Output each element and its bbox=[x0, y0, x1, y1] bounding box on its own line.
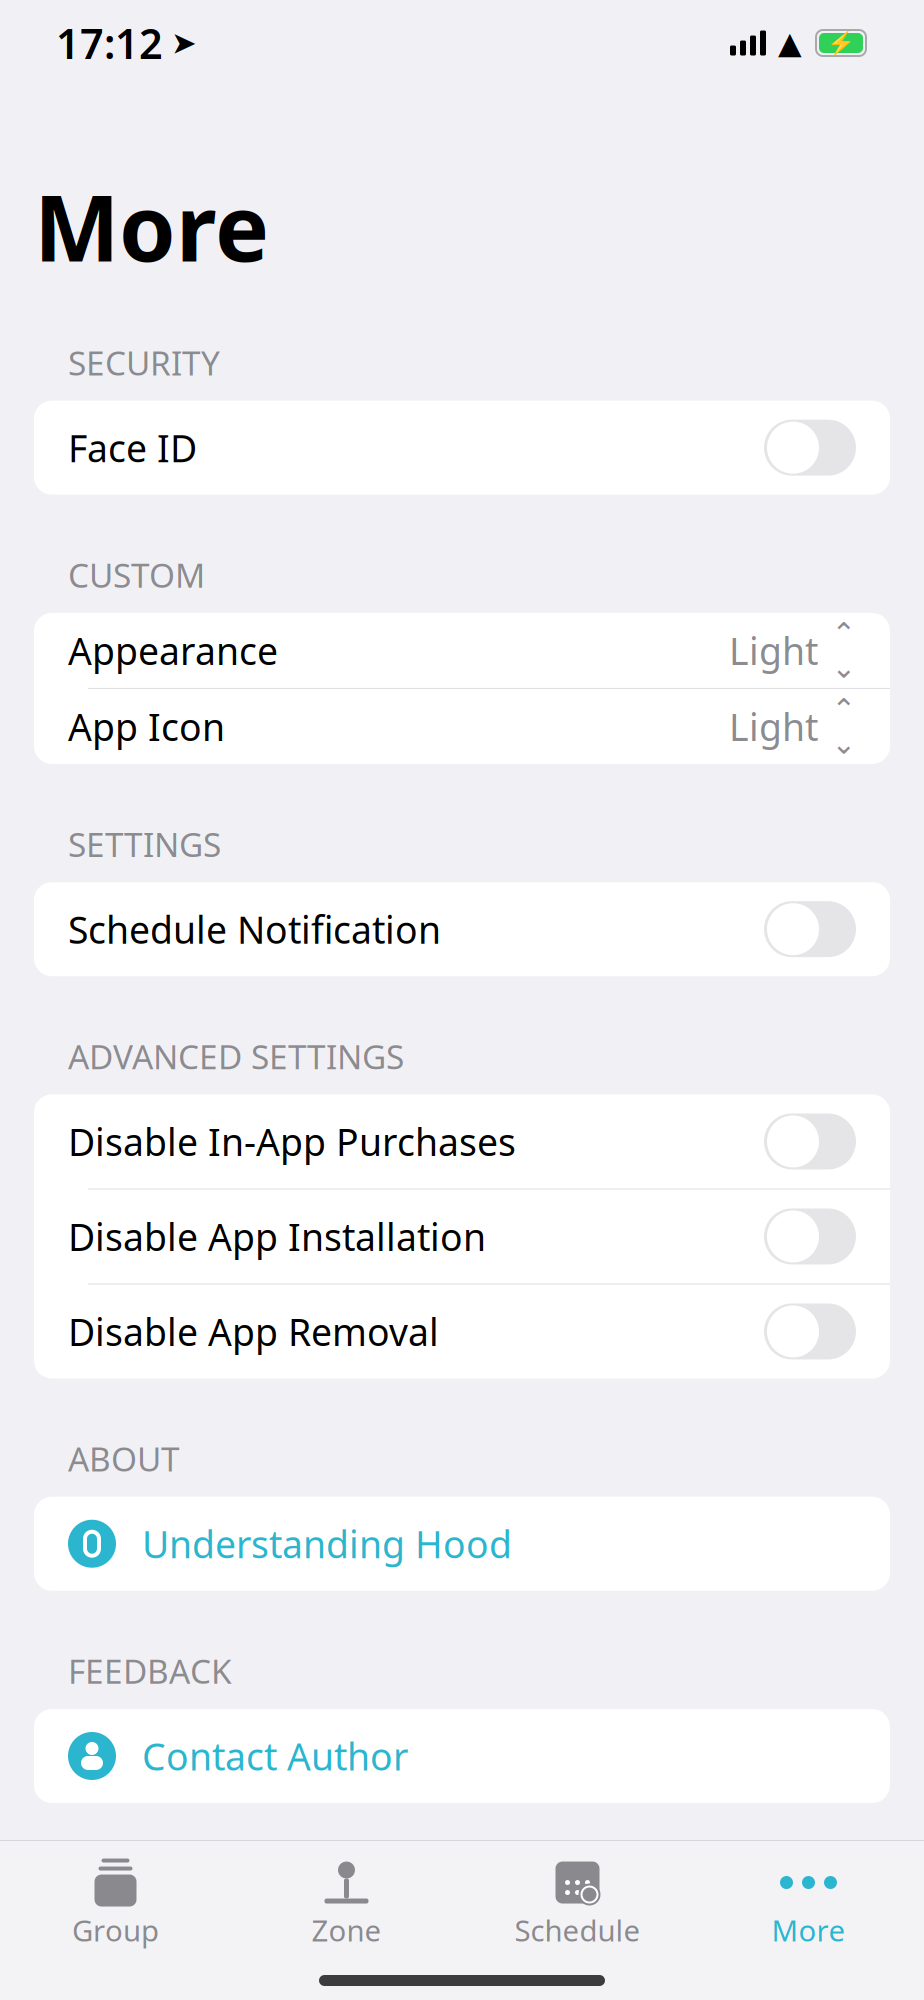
staticText: Disable App Installation bbox=[68, 1212, 486, 1261]
staticText: 17:12 bbox=[56, 16, 163, 70]
button[interactable]: Group bbox=[0, 1848, 231, 1949]
staticText: ADVANCED SETTINGS bbox=[68, 1034, 404, 1078]
staticText: CUSTOM bbox=[68, 553, 205, 597]
staticText: ABOUT bbox=[68, 1436, 180, 1481]
button[interactable]: Contact Author bbox=[34, 1709, 890, 1803]
staticText: Disable App Removal bbox=[68, 1307, 439, 1356]
staticText: ⌃ bbox=[831, 693, 856, 726]
button[interactable]: Understanding Hood bbox=[34, 1497, 890, 1591]
staticText: Schedule bbox=[514, 1910, 640, 1949]
button[interactable]: More bbox=[693, 1848, 924, 1949]
staticText: ⌄ bbox=[831, 651, 856, 684]
staticText: Schedule Notification bbox=[68, 904, 441, 954]
button[interactable]: App Icon bbox=[34, 689, 890, 764]
staticText: Group bbox=[72, 1910, 159, 1949]
staticText: Light bbox=[729, 702, 818, 751]
button[interactable]: Disable In-App Purchases bbox=[34, 1094, 890, 1188]
staticText: Light bbox=[729, 626, 818, 675]
button[interactable]: Disable App Installation bbox=[34, 1189, 890, 1283]
staticText: App Icon bbox=[68, 702, 225, 751]
button[interactable]: Schedule Notification bbox=[34, 882, 890, 976]
staticText: Appearance bbox=[68, 626, 278, 675]
staticText: ⌄ bbox=[831, 727, 856, 760]
button[interactable]: Zone bbox=[231, 1848, 462, 1949]
button[interactable]: Face ID bbox=[34, 401, 890, 495]
staticText: Zone bbox=[311, 1910, 381, 1949]
staticText: ⌃ bbox=[831, 617, 856, 650]
staticText: More bbox=[34, 166, 269, 286]
staticText: Understanding Hood bbox=[142, 1519, 512, 1568]
button[interactable]: Schedule bbox=[462, 1848, 693, 1949]
staticText: Contact Author bbox=[142, 1731, 408, 1781]
staticText: ▲ bbox=[778, 26, 802, 60]
staticText: More bbox=[771, 1910, 845, 1949]
staticText: ➤ bbox=[171, 26, 197, 60]
staticText: SETTINGS bbox=[68, 822, 221, 866]
staticText: Face ID bbox=[68, 423, 197, 472]
button[interactable]: Disable App Removal bbox=[34, 1284, 890, 1378]
staticText: FEEDBACK bbox=[68, 1649, 232, 1693]
staticText: ⚡ bbox=[827, 30, 855, 56]
button[interactable]: Appearance bbox=[34, 613, 890, 688]
staticText: Disable In-App Purchases bbox=[68, 1117, 516, 1166]
staticText: SECURITY bbox=[68, 340, 220, 385]
